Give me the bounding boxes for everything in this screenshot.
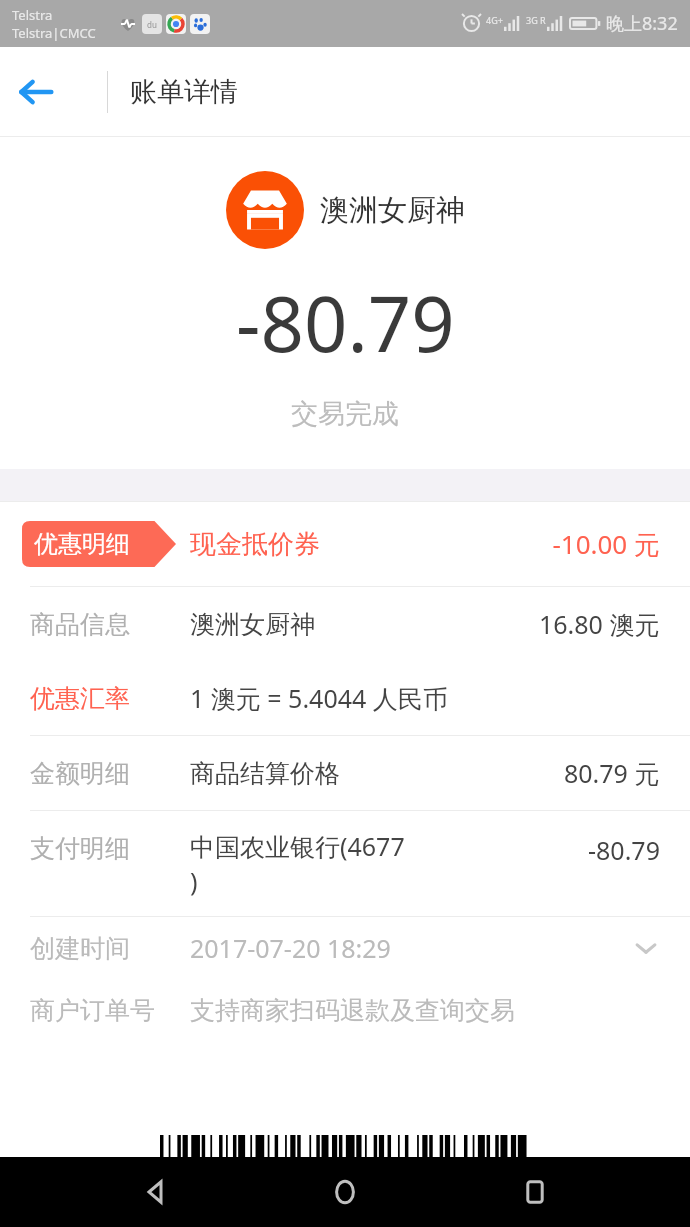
staticText: 1 澳元 = 5.4044 人民币 xyxy=(190,681,448,715)
staticText: 澳洲女厨神 xyxy=(190,609,315,640)
staticText: Telstra xyxy=(12,6,53,24)
staticText: 80.79 元 xyxy=(564,756,660,790)
button[interactable]: Back xyxy=(120,1157,190,1227)
button[interactable]: 金额明细 xyxy=(0,736,690,810)
button[interactable]: 优惠明细 xyxy=(0,502,690,586)
staticText: 16.80 澳元 xyxy=(539,607,660,641)
button[interactable]: 商户订单号 xyxy=(0,979,690,1041)
button[interactable]: 支付明细 xyxy=(0,811,690,916)
staticText: 创建时间 xyxy=(30,933,130,964)
button[interactable]: 创建时间 xyxy=(0,917,690,979)
staticText: 3G R xyxy=(526,14,546,26)
button[interactable]: Recents xyxy=(500,1157,570,1227)
staticText: du xyxy=(147,19,157,30)
other: Expand xyxy=(626,928,666,968)
staticText: 现金抵价券 xyxy=(190,528,320,561)
staticText: -80.79 xyxy=(236,271,455,375)
staticText: 商品信息 xyxy=(30,609,130,640)
staticText: 交易完成 xyxy=(291,397,399,431)
staticText: 4G+ xyxy=(486,14,503,26)
staticText: 金额明细 xyxy=(30,758,130,789)
button[interactable]: Home xyxy=(310,1157,380,1227)
staticText: 2017-07-20 18:29 xyxy=(190,931,391,965)
staticText: -80.79 xyxy=(588,833,660,867)
staticText: 账单详情 xyxy=(130,75,238,109)
staticText: 晚上8:32 xyxy=(606,11,678,36)
staticText: -10.00 元 xyxy=(552,526,660,562)
staticText: 优惠汇率 xyxy=(30,683,130,714)
button[interactable]: Back xyxy=(0,56,72,128)
button[interactable]: 优惠汇率 xyxy=(0,661,690,735)
staticText: 商户订单号 xyxy=(30,995,155,1026)
staticText: 支付明细 xyxy=(30,833,130,864)
staticText: 商品结算价格 xyxy=(190,758,340,789)
button[interactable]: 商品信息 xyxy=(0,587,690,661)
staticText: 澳洲女厨神 xyxy=(320,192,465,229)
staticText: 支持商家扫码退款及查询交易 xyxy=(190,995,515,1026)
staticText: Telstra|CMCC xyxy=(12,24,96,42)
staticText: 优惠明细 xyxy=(34,529,130,559)
staticText: 中国农业银行(4677 ) xyxy=(190,829,405,898)
